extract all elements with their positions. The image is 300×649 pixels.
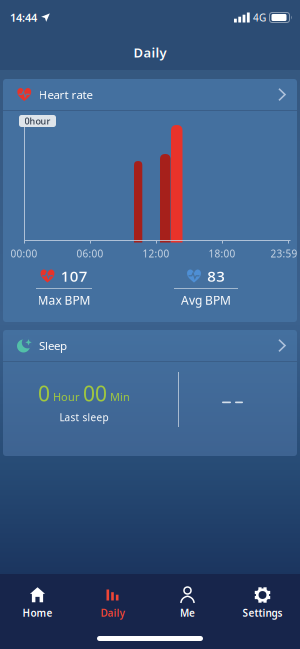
staticText: Max BPM: [37, 292, 90, 308]
staticText: 107: [61, 266, 88, 286]
staticText: 23:59: [270, 247, 297, 260]
button[interactable]: Daily: [75, 574, 150, 649]
staticText: 0hour: [24, 115, 50, 127]
staticText: 06:00: [76, 247, 103, 260]
button[interactable]: Me: [150, 574, 225, 649]
button[interactable]: Sleep: [3, 330, 297, 361]
staticText: 0: [38, 379, 50, 408]
staticText: Last sleep: [59, 411, 108, 424]
staticText: 18:00: [208, 247, 235, 260]
staticText: 14:44: [10, 10, 37, 25]
staticText: Hour: [53, 389, 80, 404]
staticText: Settings: [242, 606, 282, 620]
staticText: Avg BPM: [181, 292, 231, 308]
staticText: Daily: [133, 44, 166, 61]
staticText: Daily: [100, 606, 124, 620]
button[interactable]: Heart rate: [3, 79, 297, 110]
staticText: Heart rate: [38, 87, 92, 102]
staticText: 12:00: [142, 247, 169, 260]
button[interactable]: Home: [0, 574, 75, 649]
staticText: Home: [22, 606, 52, 620]
staticText: Sleep: [39, 338, 67, 353]
staticText: 4G: [253, 11, 266, 24]
button[interactable]: Settings: [225, 574, 300, 649]
staticText: Me: [180, 606, 195, 620]
staticText: Min: [110, 389, 130, 404]
staticText: 83: [207, 266, 225, 286]
staticText: 00:00: [10, 247, 37, 260]
staticText: 00: [83, 379, 107, 408]
